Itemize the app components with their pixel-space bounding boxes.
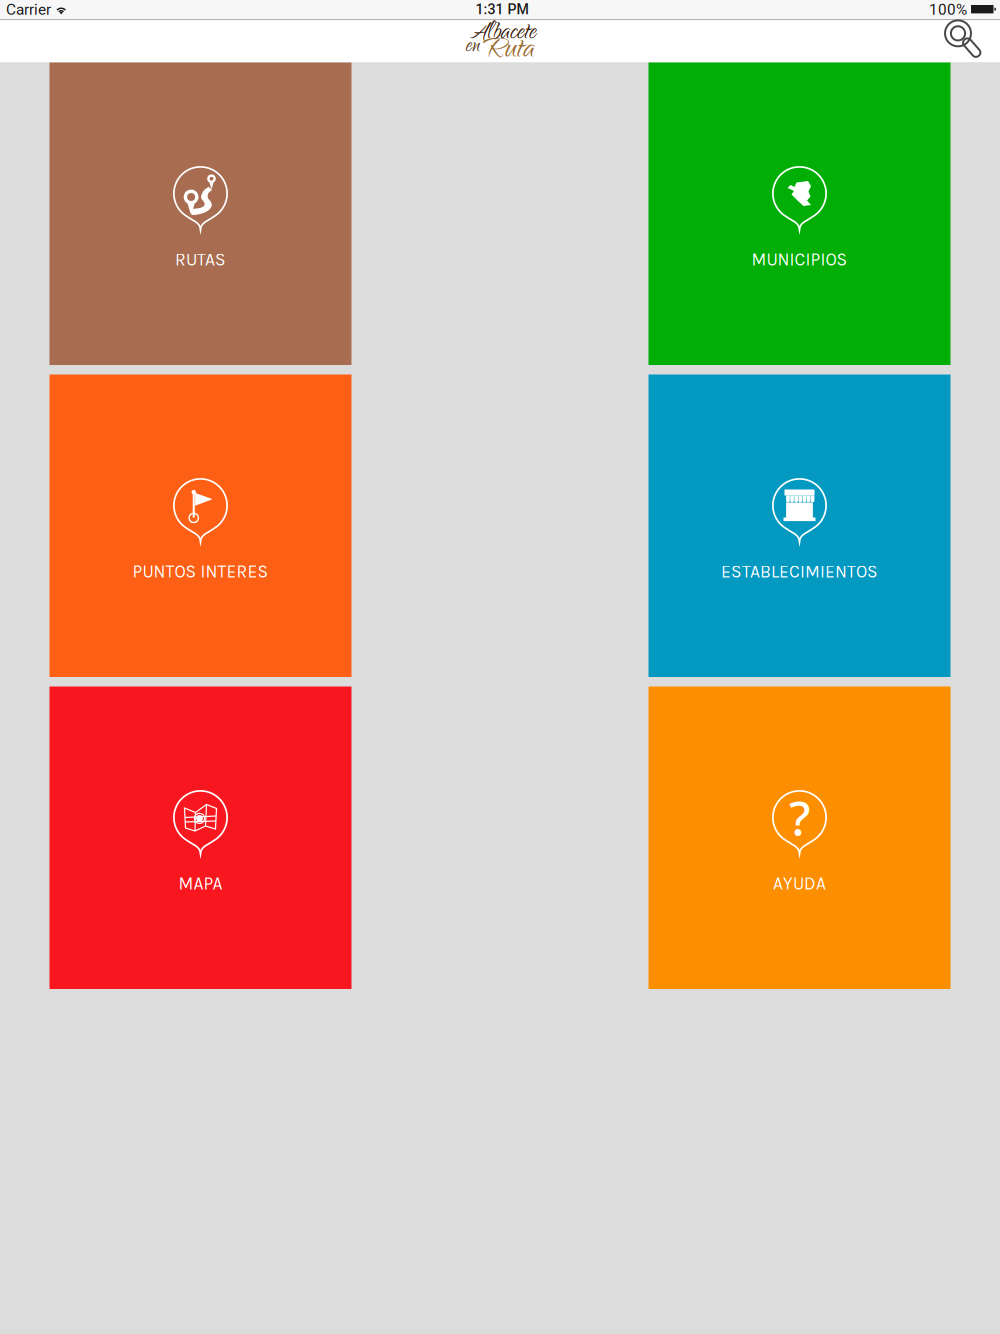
button[interactable]: MAPA — [49, 686, 351, 989]
staticText: ? — [789, 786, 810, 849]
staticText: Carrier — [6, 0, 51, 18]
staticText: RUTAS — [175, 249, 226, 270]
button[interactable]: Search — [936, 19, 1000, 63]
button[interactable]: RUTAS — [49, 62, 351, 365]
staticText: 1:31 PM — [475, 1, 528, 18]
staticText: en — [466, 31, 480, 64]
staticText: MAPA — [178, 873, 222, 894]
button[interactable]: ESTABLECIMIENTOS — [648, 374, 950, 677]
staticText: AYUDA — [773, 873, 826, 894]
button[interactable]: PUNTOS INTERES — [49, 374, 351, 677]
staticText: Albacete — [469, 15, 536, 53]
staticText: 100% — [929, 0, 967, 18]
staticText: PUNTOS INTERES — [132, 561, 268, 582]
staticText: ESTABLECIMIENTOS — [721, 561, 878, 582]
button[interactable]: MUNICIPIOS — [648, 62, 950, 365]
button[interactable]: ? — [648, 686, 950, 989]
staticText: Ruta — [483, 28, 534, 75]
staticText: MUNICIPIOS — [751, 249, 847, 270]
